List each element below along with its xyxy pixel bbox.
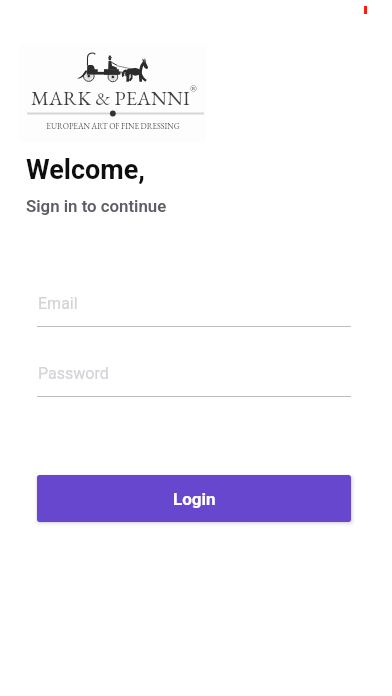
- staticText: ®: [190, 82, 197, 95]
- staticText: Sign in to continue: [26, 196, 167, 216]
- staticText: Login: [173, 489, 216, 509]
- staticText: MARK & PEANNI: [31, 85, 190, 111]
- button[interactable]: Email: [37, 282, 351, 327]
- button[interactable]: Login: [37, 475, 351, 522]
- staticText: Email: [38, 294, 78, 313]
- other: Mark & Peanni logo: [19, 45, 206, 142]
- staticText: EUROPEAN ART OF FINE DRESSING: [46, 121, 180, 132]
- staticText: Welcome,: [26, 154, 145, 186]
- staticText: Password: [38, 364, 109, 383]
- button[interactable]: Password: [37, 352, 351, 397]
